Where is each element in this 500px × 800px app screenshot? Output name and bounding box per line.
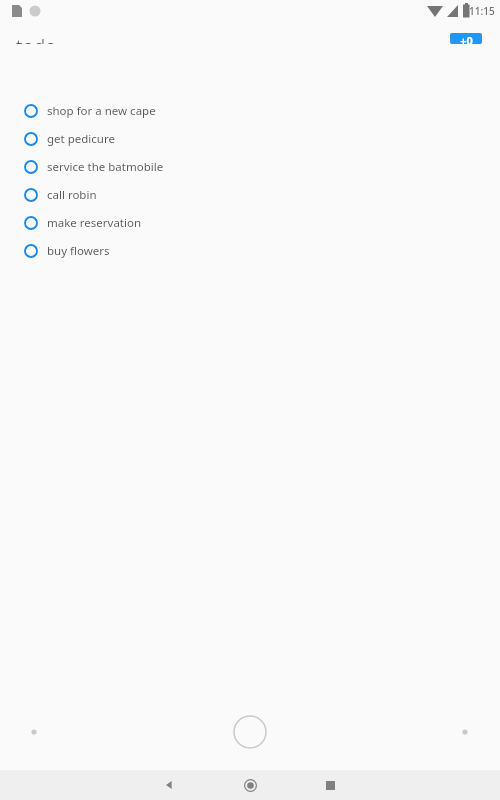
staticText: shop for a new cape: [47, 103, 156, 119]
button[interactable]: service the batmobile: [0, 153, 500, 181]
staticText: service the batmobile: [47, 159, 164, 175]
staticText: get pedicure: [47, 131, 115, 147]
staticText: buy flowers: [47, 243, 110, 259]
button[interactable]: call robin: [0, 181, 500, 209]
staticText: call robin: [47, 187, 97, 203]
staticText: make reservation: [47, 215, 142, 231]
button[interactable]: Recent apps: [316, 771, 344, 799]
button[interactable]: make reservation: [0, 209, 500, 237]
button[interactable]: get pedicure: [0, 125, 500, 153]
staticText: +0: [460, 33, 473, 44]
button[interactable]: +0: [450, 33, 482, 44]
button[interactable]: buy flowers: [0, 237, 500, 265]
staticText: 11:15: [469, 4, 495, 18]
staticText: todo: [16, 33, 57, 44]
button[interactable]: shop for a new cape: [0, 97, 500, 125]
button[interactable]: Back: [155, 771, 183, 799]
button[interactable]: Home: [236, 771, 264, 799]
